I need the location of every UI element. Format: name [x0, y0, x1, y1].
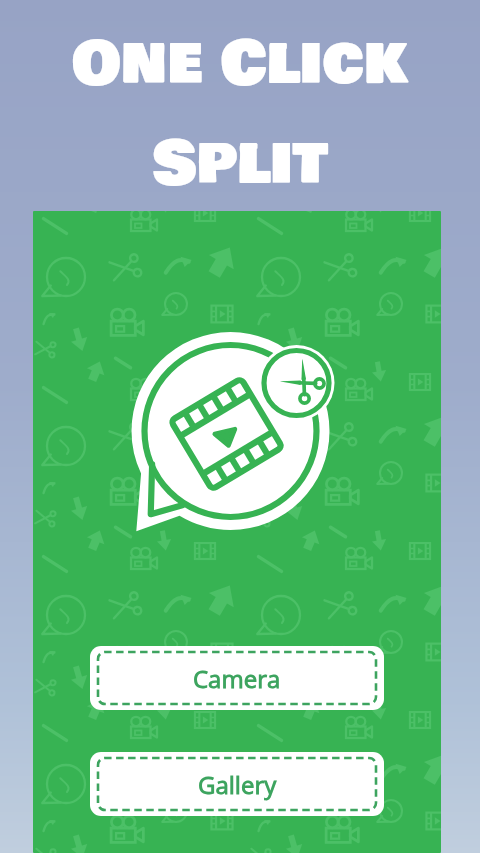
staticText: One Click — [72, 17, 408, 110]
button[interactable]: Camera — [90, 646, 384, 710]
staticText: Camera — [193, 662, 281, 695]
staticText: Split — [152, 117, 328, 210]
button[interactable]: Gallery — [90, 752, 384, 816]
staticText: Gallery — [198, 768, 277, 801]
